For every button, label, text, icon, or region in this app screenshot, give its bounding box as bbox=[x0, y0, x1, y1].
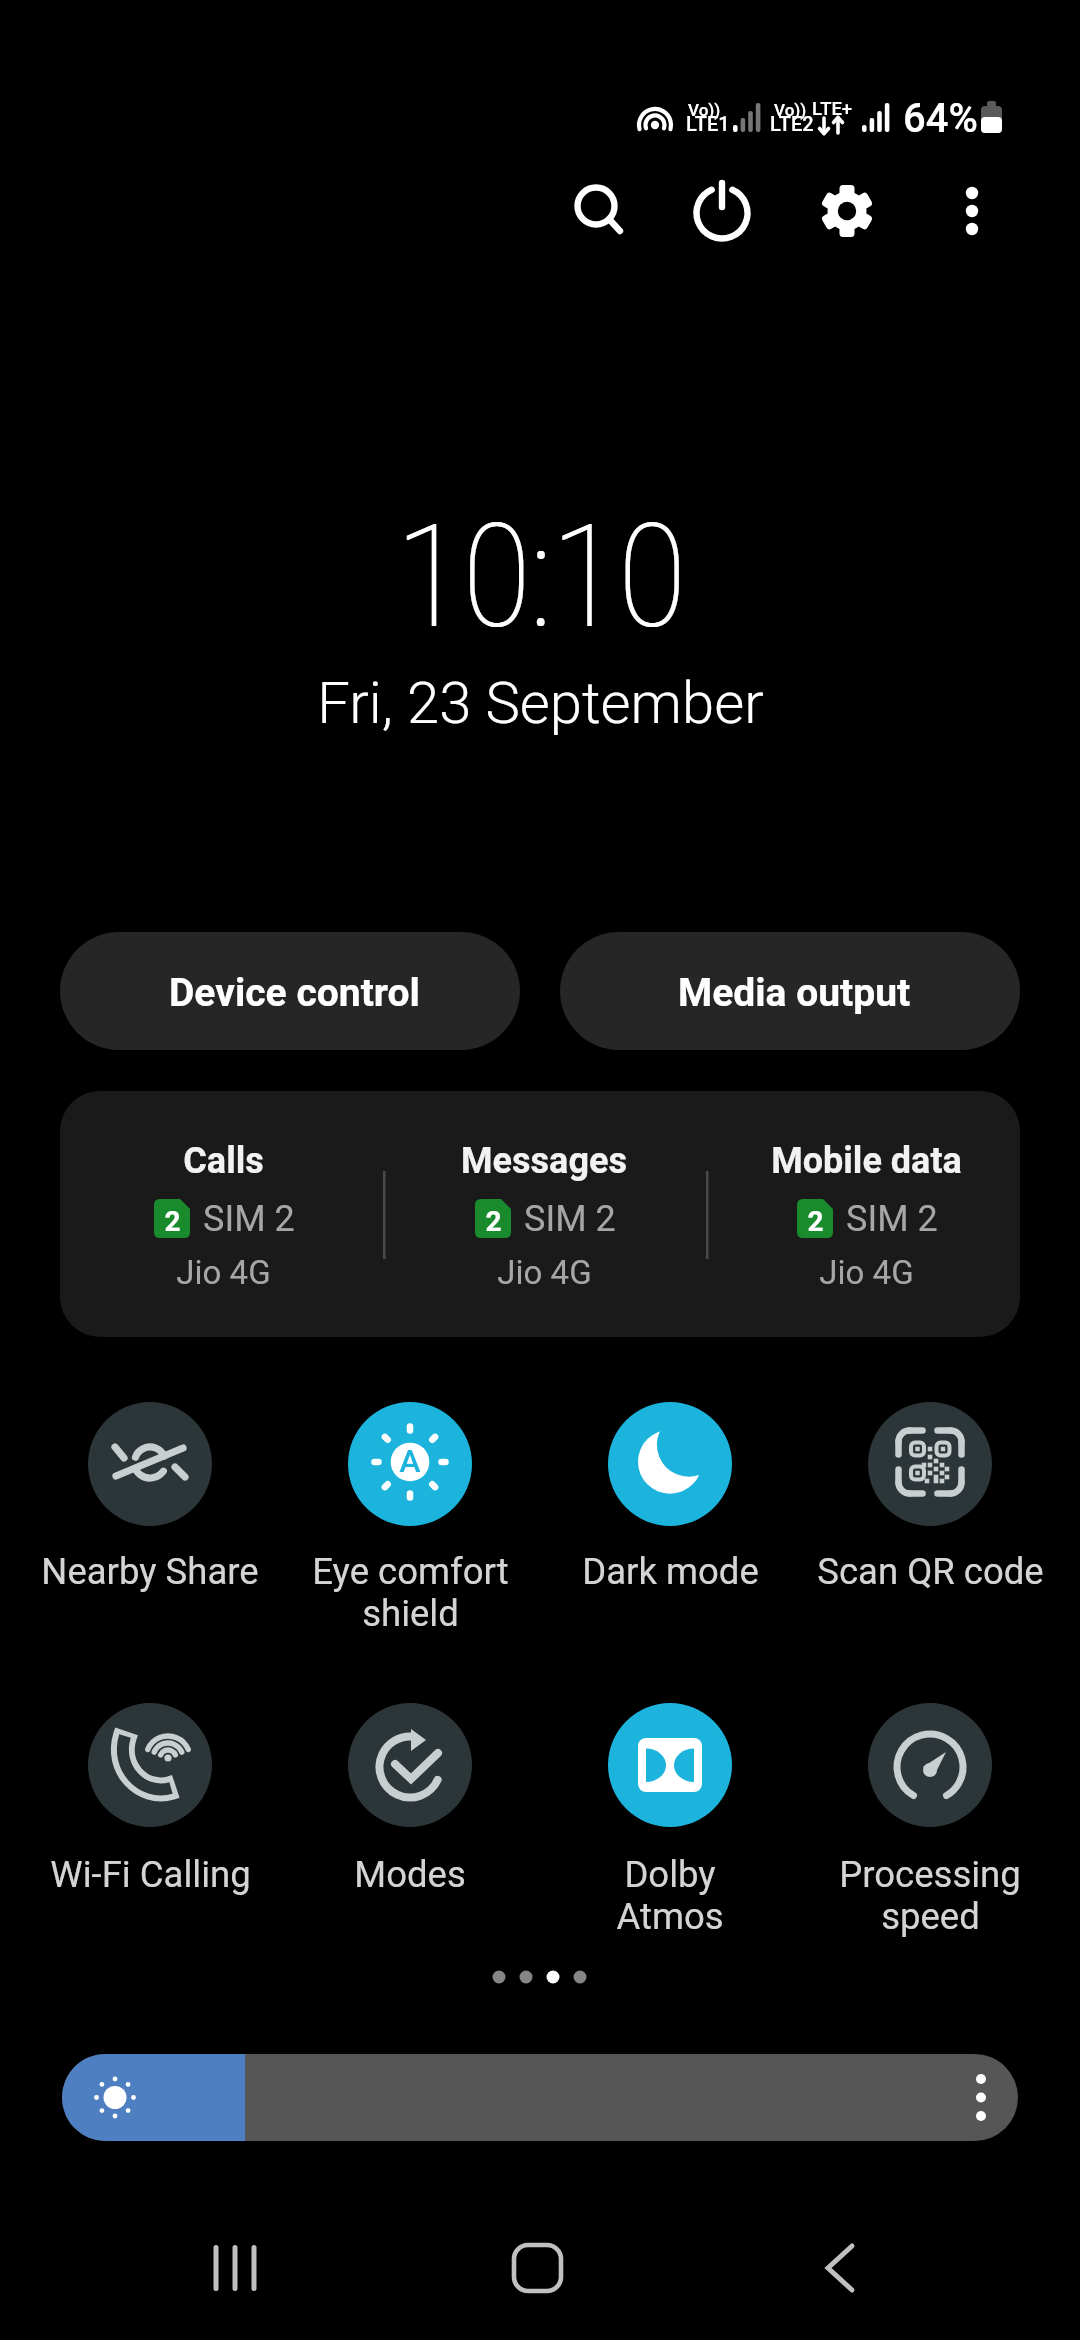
button[interactable]: Scan QR code bbox=[868, 1402, 992, 1526]
staticText: SIM 2 bbox=[203, 1198, 295, 1240]
staticText: shield bbox=[362, 1592, 459, 1635]
staticText: LTE1 bbox=[686, 112, 730, 135]
staticText: Dark mode bbox=[582, 1550, 759, 1593]
button[interactable]: Wi-Fi Calling bbox=[88, 1703, 212, 1827]
button[interactable]: Search bbox=[551, 166, 641, 256]
staticText: 64% bbox=[903, 95, 978, 142]
staticText: Jio 4G bbox=[497, 1253, 592, 1292]
staticText: Eye comfort bbox=[312, 1550, 509, 1593]
staticText: Atmos bbox=[616, 1895, 724, 1938]
staticText: Modes bbox=[354, 1853, 466, 1896]
button[interactable]: Mobile data, SIM 2, Jio 4G bbox=[716, 1120, 1016, 1310]
staticText: 10:10 bbox=[397, 493, 686, 661]
staticText: Processing bbox=[839, 1853, 1021, 1896]
button[interactable]: Brightness bbox=[62, 2054, 1018, 2141]
button[interactable]: Power off bbox=[677, 166, 767, 256]
button[interactable]: Dark mode bbox=[608, 1402, 732, 1526]
staticText: Jio 4G bbox=[819, 1253, 914, 1292]
staticText: Device control bbox=[169, 970, 420, 1016]
staticText: Scan QR code bbox=[817, 1550, 1044, 1593]
staticText: Media output bbox=[678, 970, 911, 1016]
staticText: 2 bbox=[164, 1205, 181, 1238]
staticText: 10:10 bbox=[396, 493, 685, 661]
staticText: Dolby bbox=[624, 1853, 716, 1896]
button[interactable]: Calls, SIM 2, Jio 4G bbox=[73, 1120, 373, 1310]
staticText: Jio 4G bbox=[176, 1253, 271, 1292]
staticText: Calls bbox=[183, 1140, 264, 1182]
staticText: Wi-Fi Calling bbox=[50, 1853, 251, 1896]
staticText: LTE2 bbox=[770, 112, 814, 135]
staticText: speed bbox=[881, 1895, 980, 1938]
staticText: Mobile data bbox=[771, 1140, 962, 1182]
staticText: LTE+ bbox=[812, 98, 853, 120]
staticText: Nearby Share bbox=[41, 1550, 259, 1593]
button[interactable]: Home bbox=[477, 2208, 597, 2328]
button[interactable]: Back bbox=[780, 2208, 900, 2328]
button[interactable]: Processing speed bbox=[868, 1703, 992, 1827]
button[interactable]: Eye comfort shield bbox=[348, 1402, 472, 1526]
staticText: 2 bbox=[807, 1205, 824, 1238]
staticText: SIM 2 bbox=[524, 1198, 616, 1240]
staticText: A bbox=[399, 1442, 421, 1480]
button[interactable]: Messages, SIM 2, Jio 4G bbox=[394, 1120, 694, 1310]
button[interactable]: Dolby Atmos bbox=[608, 1703, 732, 1827]
button[interactable]: More options bbox=[927, 166, 1017, 256]
button[interactable]: Modes bbox=[348, 1703, 472, 1827]
button[interactable]: Settings bbox=[802, 166, 892, 256]
staticText: Vo)) bbox=[774, 100, 807, 120]
button[interactable]: Recents bbox=[175, 2208, 295, 2328]
staticText: Messages bbox=[461, 1140, 627, 1182]
staticText: 2 bbox=[485, 1205, 502, 1238]
button[interactable]: Media output bbox=[560, 932, 1020, 1050]
button[interactable]: Device control bbox=[60, 932, 520, 1050]
staticText: Fri, 23 September bbox=[317, 669, 764, 737]
button[interactable]: Nearby Share bbox=[88, 1402, 212, 1526]
staticText: SIM 2 bbox=[846, 1198, 938, 1240]
staticText: Vo)) bbox=[688, 100, 721, 120]
